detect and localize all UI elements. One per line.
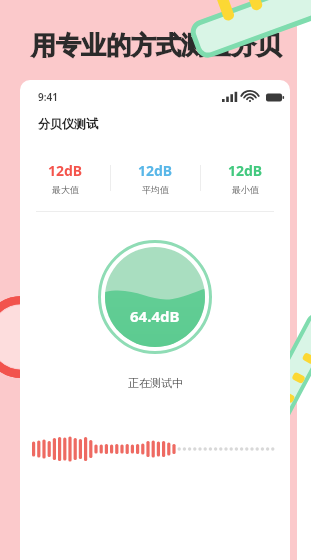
button[interactable]: 12dB — [111, 155, 200, 201]
staticText: 64.4dB — [130, 306, 180, 326]
staticText: 正在测试中 — [128, 376, 183, 390]
staticText: 用专业的方式测量分贝 — [31, 30, 281, 61]
staticText: 分贝仪测试 — [38, 116, 98, 131]
staticText: 12dB — [228, 161, 263, 180]
staticText: 最大值 — [52, 184, 79, 195]
staticText: 平均值 — [142, 184, 169, 195]
button[interactable]: 12dB — [201, 155, 290, 201]
staticText: 12dB — [138, 161, 173, 180]
staticText: 9:41 — [38, 90, 58, 104]
button[interactable]: Decibel level 64.4 dB — [98, 240, 212, 354]
staticText: 最小值 — [232, 184, 259, 195]
button[interactable]: 12dB — [20, 155, 110, 201]
staticText: 12dB — [48, 161, 83, 180]
